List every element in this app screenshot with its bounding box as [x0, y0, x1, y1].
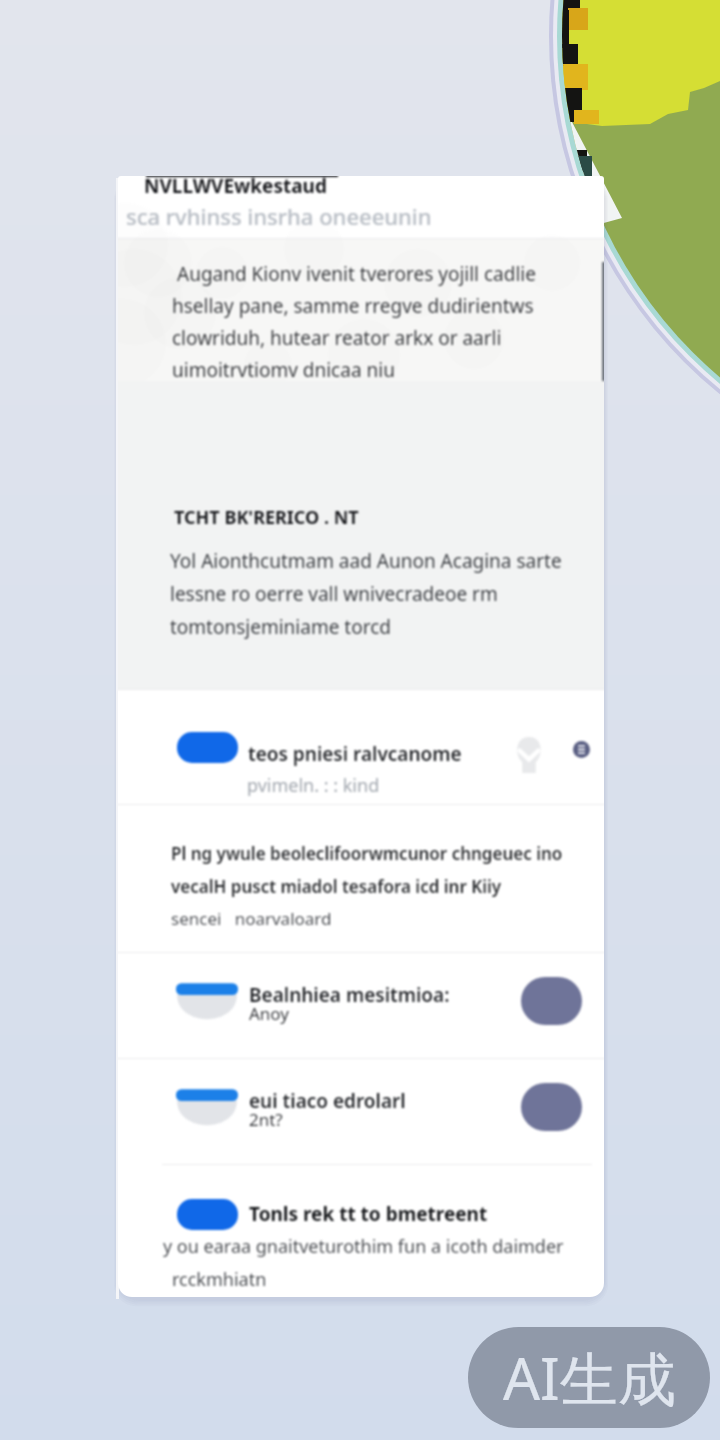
staticText: Anoy: [249, 1002, 289, 1025]
staticText: clowriduh, hutear reator arkx or aarli: [172, 325, 502, 351]
staticText: vecalH pusct miadol tesafora icd inr Kii…: [171, 875, 502, 898]
staticText: teos pniesi ralvcanome: [248, 741, 462, 767]
staticText: lessne ro oerre vall wnivecradeoe rm: [170, 581, 498, 607]
staticText: Bealnhiea mesitmioa:: [249, 982, 450, 1008]
staticText: Yol Aionthcutmam aad Aunon Acagina sarte: [170, 548, 562, 574]
staticText: pvimeln. : : kind: [247, 773, 380, 798]
staticText: tomtonsjeminiame torcd: [170, 614, 391, 640]
staticText: y ou earaa gnaitveturothim fun a icoth d…: [163, 1234, 564, 1259]
staticText: 2nt?: [249, 1108, 283, 1131]
other: Info: [573, 741, 590, 758]
other: Verified badge: [516, 737, 542, 773]
staticText: Tonls rek tt to bmetreent: [249, 1201, 488, 1227]
staticText: eui tiaco edrolarl: [249, 1088, 406, 1114]
staticText: sencei noarvaloard: [171, 907, 332, 930]
staticText: Augand Kionv ivenit tverores yojill cadl…: [177, 261, 536, 287]
staticText: hsellay pane, samme rregve dudirientws: [172, 293, 534, 319]
staticText: Pl ng ywule beoleclifoorwmcunor chngeuec…: [171, 842, 563, 865]
staticText: rcckmhiatn: [172, 1267, 267, 1292]
button[interactable]: eui tiaco edrolarl: [118, 1058, 604, 1165]
button[interactable]: Tonls rek tt to bmetreent: [118, 1190, 604, 1238]
staticText: AI生成: [503, 1338, 676, 1417]
staticText: sca rvhinss insrha oneeeunin: [126, 201, 432, 231]
button[interactable]: teos pniesi ralvcanome: [118, 690, 604, 804]
staticText: uimoitrvtiomv dnicaa niu: [172, 357, 395, 383]
staticText: TCHT BK'RERICO . NT: [174, 505, 359, 530]
button[interactable]: Bealnhiea mesitmioa:: [118, 952, 604, 1058]
staticText: NVLLWVEwkestaud: [144, 176, 327, 199]
